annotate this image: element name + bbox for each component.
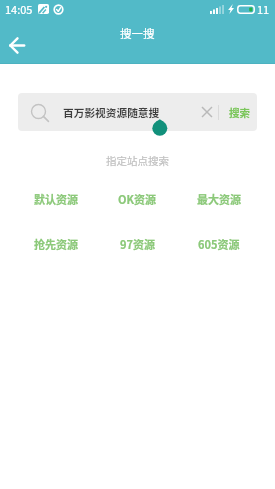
button[interactable]: 抢先资源: [15, 236, 96, 252]
button[interactable]: 最大资源: [178, 191, 260, 207]
button[interactable]: 97资源: [96, 236, 178, 252]
button[interactable]: Back: [1, 29, 33, 61]
staticText: 指定站点搜索: [0, 153, 275, 168]
staticText: OK资源: [118, 191, 157, 207]
button[interactable]: 605资源: [178, 236, 260, 252]
staticText: 搜索: [229, 105, 250, 120]
button[interactable]: 默认资源: [15, 191, 96, 207]
staticText: 最大资源: [197, 191, 241, 207]
staticText: 百万影视资源随意搜: [63, 105, 160, 120]
staticText: 14:05: [5, 1, 33, 17]
button[interactable]: 搜索: [220, 93, 257, 131]
button[interactable]: 百万影视资源随意搜: [18, 93, 257, 131]
staticText: 605资源: [198, 236, 240, 252]
staticText: 抢先资源: [34, 236, 78, 252]
button[interactable]: OK资源: [96, 191, 178, 207]
staticText: 11: [257, 1, 270, 17]
button[interactable]: Clear: [194, 99, 220, 125]
staticText: 默认资源: [34, 191, 78, 207]
staticText: 97资源: [120, 236, 155, 252]
staticText: 搜一搜: [120, 25, 155, 42]
